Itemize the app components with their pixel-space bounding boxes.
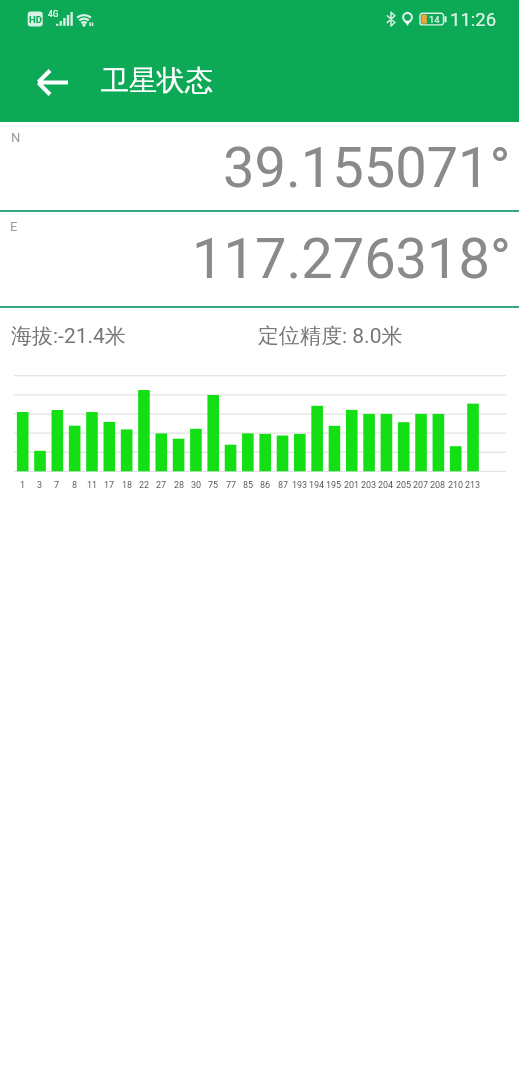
staticText: 27 xyxy=(156,480,167,491)
staticText: 205 xyxy=(396,480,412,491)
staticText: 30 xyxy=(191,480,202,491)
staticText: 17 xyxy=(104,480,115,491)
staticText: 75 xyxy=(208,480,219,491)
staticText: 海拔:-21.4米 xyxy=(11,323,126,349)
staticText: 8 xyxy=(72,480,78,491)
staticText: 卫星状态 xyxy=(101,63,213,98)
staticText: 18 xyxy=(122,480,133,491)
staticText: 39.155071° xyxy=(223,135,511,201)
staticText: 195 xyxy=(326,480,342,491)
staticText: 定位精度: 8.0米 xyxy=(258,323,403,349)
staticText: 193 xyxy=(292,480,308,491)
staticText: 210 xyxy=(448,480,464,491)
button[interactable] xyxy=(30,66,76,98)
staticText: E xyxy=(10,219,18,234)
staticText: N xyxy=(11,130,21,145)
staticText: 85 xyxy=(243,480,254,491)
staticText: 86 xyxy=(260,480,271,491)
staticText: 208 xyxy=(430,480,446,491)
staticText: 204 xyxy=(378,480,394,491)
staticText: 4G xyxy=(48,9,59,19)
staticText: 14 xyxy=(429,14,440,25)
staticText: 194 xyxy=(309,480,325,491)
staticText: 11:26 xyxy=(450,9,497,31)
staticText: 117.276318° xyxy=(192,226,511,292)
staticText: 11 xyxy=(87,480,98,491)
staticText: 207 xyxy=(413,480,429,491)
staticText: 7 xyxy=(54,480,60,491)
staticText: HD xyxy=(29,14,42,25)
staticText: 28 xyxy=(174,480,185,491)
staticText: 22 xyxy=(139,480,150,491)
staticText: 1 xyxy=(20,480,26,491)
staticText: 201 xyxy=(344,480,360,491)
staticText: 3 xyxy=(37,480,43,491)
staticText: 77 xyxy=(226,480,237,491)
staticText: 213 xyxy=(465,480,481,491)
staticText: 203 xyxy=(361,480,377,491)
staticText: 87 xyxy=(278,480,289,491)
